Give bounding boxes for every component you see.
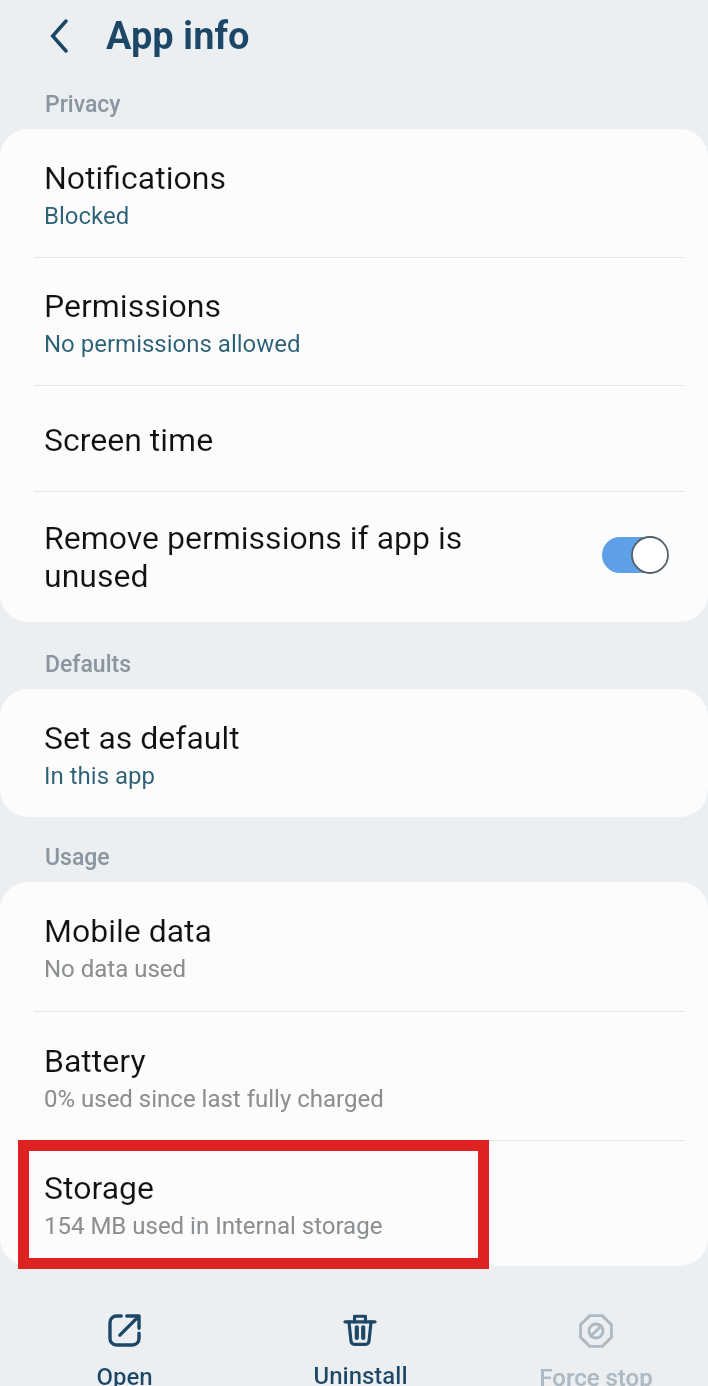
staticText: Screen time: [44, 421, 214, 459]
button[interactable]: Force stop: [478, 1304, 708, 1386]
staticText: Defaults: [45, 651, 132, 678]
staticText: Uninstall: [313, 1362, 408, 1386]
button[interactable]: Battery: [0, 1012, 708, 1140]
button[interactable]: Set as default: [0, 689, 708, 817]
button[interactable]: Open: [6, 1304, 242, 1386]
staticText: 0% used since last fully charged: [44, 1085, 384, 1113]
staticText: In this app: [44, 762, 155, 790]
button[interactable]: Permissions: [0, 258, 708, 385]
staticText: Force stop: [539, 1364, 653, 1386]
staticText: Blocked: [44, 202, 130, 230]
staticText: Set as default: [44, 719, 240, 757]
staticText: No permissions allowed: [44, 330, 301, 358]
staticText: Remove permissions if app is unused: [44, 519, 484, 595]
staticText: Battery: [44, 1042, 146, 1080]
button[interactable]: Uninstall: [242, 1304, 478, 1386]
staticText: 154 MB used in Internal storage: [44, 1212, 383, 1240]
staticText: No data used: [44, 955, 187, 983]
button[interactable]: Mobile data: [0, 882, 708, 1011]
staticText: Usage: [45, 844, 110, 871]
staticText: Open: [96, 1363, 153, 1386]
button[interactable]: Storage: [0, 1141, 708, 1266]
staticText: Privacy: [45, 91, 121, 118]
staticText: Mobile data: [44, 912, 212, 950]
button[interactable]: Remove permissions if app is unused: [0, 492, 708, 622]
staticText: Storage: [44, 1169, 154, 1207]
staticText: Notifications: [44, 159, 226, 197]
button[interactable]: Screen time: [0, 386, 708, 491]
staticText: Permissions: [44, 287, 221, 325]
button[interactable]: Notifications: [0, 129, 708, 257]
button[interactable]: Back: [33, 10, 85, 62]
staticText: App info: [106, 14, 250, 59]
